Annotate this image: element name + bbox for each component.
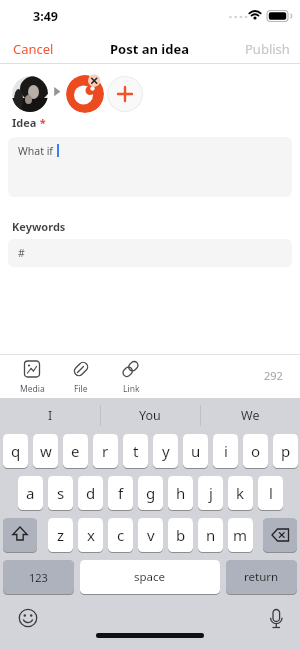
staticText: e <box>71 441 80 461</box>
staticText: Media <box>20 383 45 395</box>
staticText: 3:49 <box>33 8 58 25</box>
button[interactable] <box>107 76 143 112</box>
button[interactable]: b <box>168 518 193 552</box>
button[interactable]: j <box>198 476 223 510</box>
staticText: What if <box>18 144 53 158</box>
button[interactable]: h <box>168 476 193 510</box>
staticText: x <box>87 525 95 545</box>
staticText: a <box>26 483 35 503</box>
button[interactable] <box>12 356 52 396</box>
button[interactable]: Publish <box>234 38 294 60</box>
staticText: i <box>224 441 228 461</box>
staticText: Publish <box>245 40 290 58</box>
staticText: s <box>57 483 65 503</box>
staticText: u <box>191 441 201 461</box>
button[interactable] <box>112 356 150 396</box>
button[interactable]: # <box>8 239 292 267</box>
button[interactable]: q <box>3 434 28 468</box>
staticText: r <box>102 441 109 461</box>
staticText: 292 <box>264 368 283 383</box>
staticText: y <box>162 441 170 461</box>
staticText: f <box>118 483 124 503</box>
button[interactable]: You <box>100 398 200 433</box>
button[interactable]: Cancel <box>6 38 61 60</box>
staticText: File <box>74 383 88 395</box>
staticText: d <box>86 483 96 503</box>
button[interactable]: c <box>108 518 133 552</box>
button[interactable]: return <box>226 560 297 594</box>
staticText: p <box>281 441 291 461</box>
button[interactable] <box>12 76 48 112</box>
button[interactable] <box>263 518 297 552</box>
staticText: h <box>176 483 186 503</box>
button[interactable]: p <box>273 434 298 468</box>
button[interactable]: l <box>258 476 283 510</box>
button[interactable]: e <box>63 434 88 468</box>
staticText: w <box>40 441 52 461</box>
staticText: space <box>134 569 166 585</box>
staticText: q <box>11 441 21 461</box>
button[interactable]: a <box>18 476 43 510</box>
staticText: n <box>206 525 216 545</box>
button[interactable]: k <box>228 476 253 510</box>
staticText: j <box>209 483 213 503</box>
button[interactable]: 123 <box>3 560 74 594</box>
staticText: We <box>241 407 260 424</box>
staticText: # <box>18 246 25 260</box>
staticText: b <box>176 525 186 545</box>
button[interactable]: We <box>200 398 300 433</box>
button[interactable]: space <box>80 560 220 594</box>
button[interactable]: r <box>93 434 118 468</box>
staticText: Keywords <box>12 219 66 234</box>
button[interactable]: m <box>228 518 253 552</box>
staticText: t <box>133 441 139 461</box>
button[interactable]: n <box>198 518 223 552</box>
button[interactable]: z <box>48 518 73 552</box>
staticText: m <box>233 525 248 545</box>
staticText: 123 <box>29 570 48 585</box>
staticText: v <box>147 525 155 545</box>
button[interactable]: d <box>78 476 103 510</box>
button[interactable]: What if <box>8 137 292 197</box>
button[interactable] <box>66 75 104 113</box>
staticText: I <box>48 407 53 424</box>
staticText: z <box>57 525 65 545</box>
staticText: l <box>269 483 273 503</box>
button[interactable]: v <box>138 518 163 552</box>
button[interactable] <box>62 356 100 396</box>
button[interactable] <box>3 518 37 552</box>
button[interactable]: f <box>108 476 133 510</box>
staticText: * <box>37 115 46 130</box>
staticText: Idea <box>12 115 37 130</box>
button[interactable] <box>14 604 42 632</box>
button[interactable]: I <box>0 398 100 433</box>
staticText: Post an idea <box>110 40 190 58</box>
button[interactable] <box>262 604 290 632</box>
staticText: Link <box>123 383 140 395</box>
staticText: return <box>244 569 279 585</box>
staticText: k <box>236 483 245 503</box>
staticText: g <box>146 483 156 503</box>
staticText: Cancel <box>13 40 54 58</box>
staticText: o <box>251 441 261 461</box>
button[interactable]: u <box>183 434 208 468</box>
button[interactable]: y <box>153 434 178 468</box>
button[interactable]: o <box>243 434 268 468</box>
button[interactable]: i <box>213 434 238 468</box>
button[interactable]: w <box>33 434 58 468</box>
button[interactable]: g <box>138 476 163 510</box>
button[interactable]: x <box>78 518 103 552</box>
staticText: c <box>117 525 125 545</box>
button[interactable]: s <box>48 476 73 510</box>
staticText: You <box>139 407 161 424</box>
button[interactable]: t <box>123 434 148 468</box>
